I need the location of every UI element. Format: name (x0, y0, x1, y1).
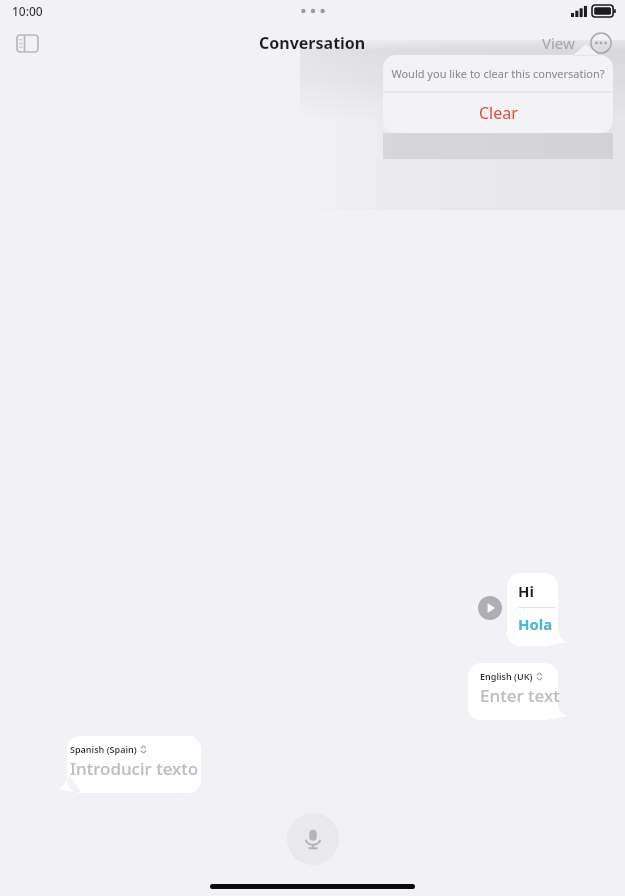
button[interactable]: Play translation (478, 596, 502, 620)
staticText: Enter text (480, 684, 560, 707)
staticText: View (542, 33, 575, 53)
staticText: Hi (518, 581, 534, 601)
staticText: 10:00 (12, 3, 43, 19)
button[interactable]: English (UK) (468, 663, 567, 720)
button[interactable]: Show sidebar (12, 28, 42, 58)
button[interactable]: More options (590, 32, 612, 54)
staticText: Hola (518, 614, 553, 634)
button[interactable]: Spanish (Spain) (58, 736, 201, 793)
button[interactable]: Clear (383, 92, 613, 133)
button[interactable]: Record (287, 813, 339, 865)
button[interactable]: View (538, 29, 579, 57)
staticText: Introducir texto (70, 757, 199, 780)
staticText: Clear (479, 102, 518, 124)
staticText: Spanish (Spain) (70, 743, 137, 755)
button[interactable]: Hi (507, 573, 567, 646)
staticText: English (UK) (480, 670, 533, 682)
staticText: Conversation (259, 32, 366, 54)
staticText: Would you like to clear this conversatio… (391, 66, 605, 81)
